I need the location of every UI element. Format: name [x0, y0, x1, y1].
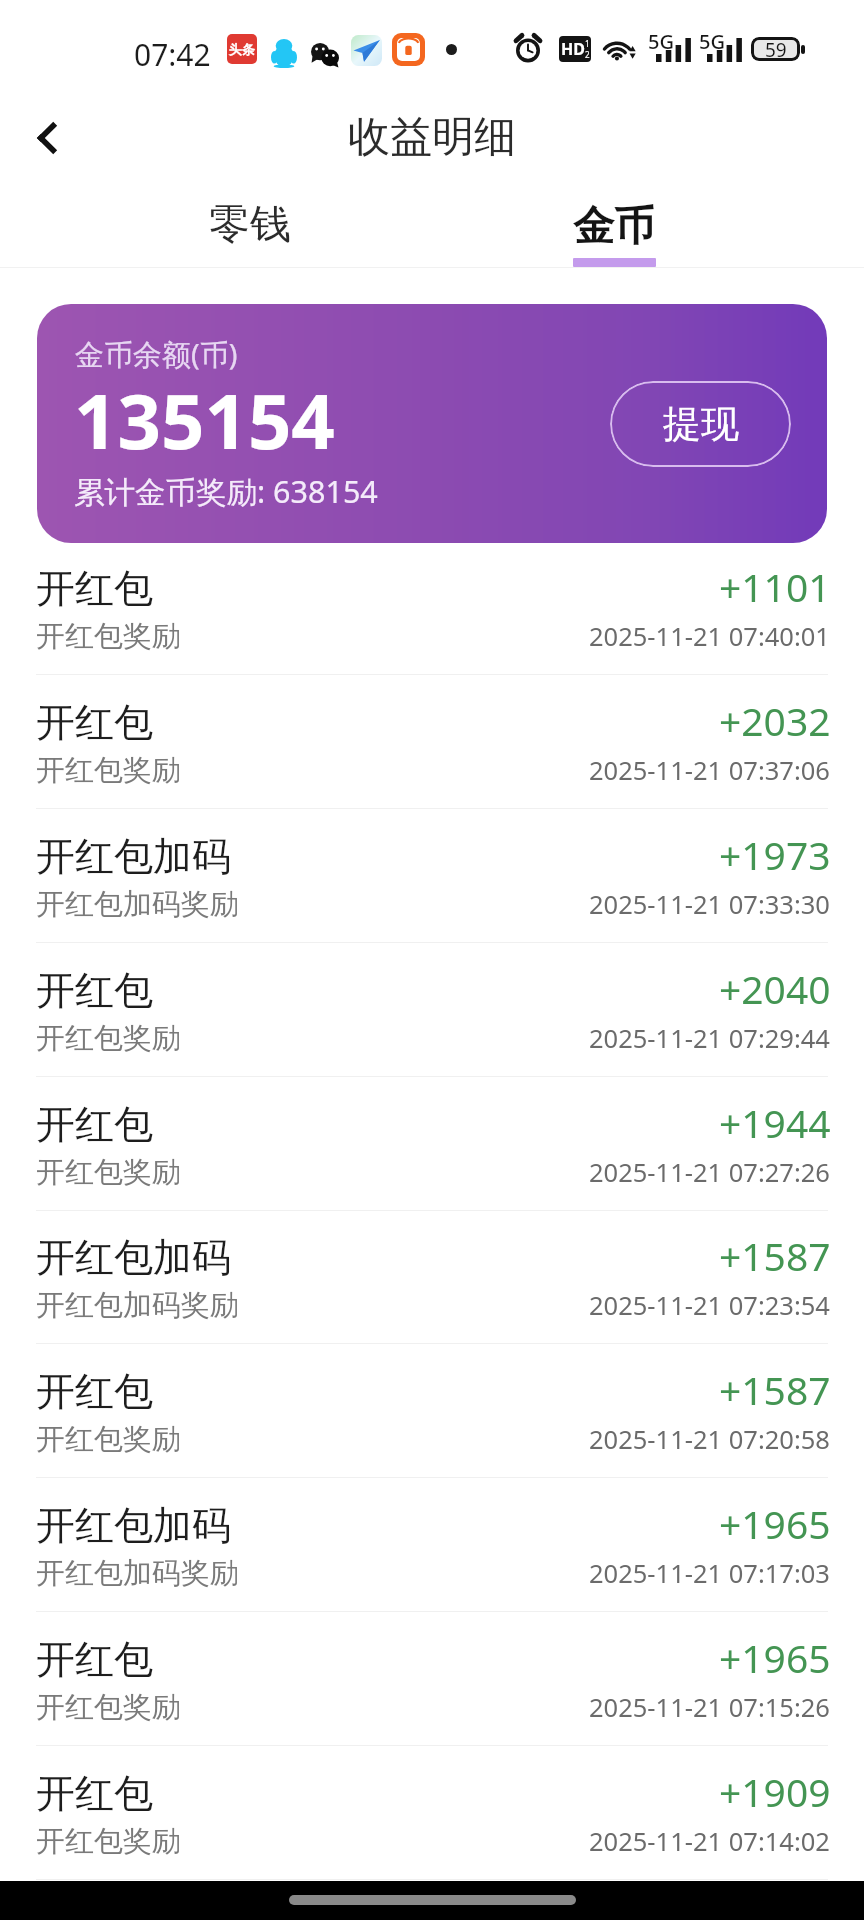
button[interactable]: 开红包加码: [0, 809, 864, 943]
staticText: +1587: [719, 1363, 831, 1416]
staticText: 开红包: [36, 698, 153, 747]
button[interactable]: 开红包: [0, 1612, 864, 1746]
button[interactable]: 提现: [610, 381, 791, 467]
button[interactable]: 开红包加码: [0, 1210, 864, 1344]
staticText: 开红包加码: [36, 1501, 231, 1550]
staticText: 开红包奖励: [36, 1020, 181, 1057]
staticText: 开红包奖励: [36, 618, 181, 655]
staticText: 开红包: [36, 1769, 153, 1818]
staticText: 2025-11-21 07:29:44: [589, 1021, 830, 1056]
staticText: 2025-11-21 07:37:06: [589, 753, 830, 788]
staticText: +1944: [719, 1096, 831, 1149]
staticText: 开红包: [36, 1367, 153, 1416]
staticText: +1973: [719, 828, 831, 881]
staticText: +2032: [719, 694, 831, 747]
staticText: 135154: [74, 368, 335, 472]
button[interactable]: 开红包: [0, 1077, 864, 1211]
staticText: +1909: [719, 1765, 831, 1818]
staticText: HD: [561, 38, 585, 60]
staticText: +2040: [719, 962, 831, 1015]
button[interactable]: Back: [11, 102, 83, 174]
staticText: 开红包: [36, 1635, 153, 1684]
staticText: 收益明细: [348, 111, 516, 164]
staticText: 59: [765, 37, 787, 61]
staticText: +1587: [719, 1229, 831, 1282]
staticText: 开红包加码奖励: [36, 886, 239, 923]
staticText: 开红包奖励: [36, 1421, 181, 1458]
button[interactable]: 开红包: [0, 541, 864, 675]
staticText: 开红包加码奖励: [36, 1555, 239, 1592]
staticText: 开红包加码奖励: [36, 1287, 239, 1324]
staticText: 累计金币奖励: 638154: [74, 470, 378, 512]
staticText: 开红包: [36, 1100, 153, 1149]
staticText: +1965: [719, 1497, 831, 1550]
staticText: 2025-11-21 07:27:26: [589, 1155, 830, 1190]
staticText: 开红包奖励: [36, 1823, 181, 1860]
staticText: 2025-11-21 07:33:30: [589, 887, 830, 922]
staticText: 开红包加码: [36, 1233, 231, 1282]
button[interactable]: 开红包: [0, 1746, 864, 1880]
staticText: 2025-11-21 07:40:01: [589, 619, 830, 654]
button[interactable]: 开红包: [0, 1344, 864, 1478]
staticText: 2025-11-21 07:14:02: [589, 1824, 830, 1859]
staticText: 提现: [663, 400, 739, 448]
staticText: 2025-11-21 07:20:58: [589, 1422, 830, 1457]
staticText: 开红包: [36, 564, 153, 613]
staticText: 2: [585, 49, 590, 60]
staticText: 头条: [229, 41, 255, 57]
staticText: 2025-11-21 07:23:54: [589, 1288, 830, 1323]
staticText: 5G: [699, 28, 725, 55]
button[interactable]: 金币: [524, 180, 704, 268]
staticText: 2025-11-21 07:17:03: [589, 1556, 830, 1591]
staticText: 金币余额(币): [75, 334, 238, 374]
staticText: 开红包: [36, 966, 153, 1015]
staticText: 开红包加码: [36, 832, 231, 881]
staticText: 开红包奖励: [36, 1154, 181, 1191]
staticText: 金币: [573, 201, 655, 253]
staticText: 开红包奖励: [36, 1689, 181, 1726]
button[interactable]: 开红包加码: [0, 1478, 864, 1612]
button[interactable]: 开红包: [0, 943, 864, 1077]
staticText: +1965: [719, 1631, 831, 1684]
staticText: 2025-11-21 07:15:26: [589, 1690, 830, 1725]
staticText: 开红包奖励: [36, 752, 181, 789]
staticText: +1101: [719, 560, 831, 613]
button[interactable]: 零钱: [160, 180, 340, 268]
staticText: 07:42: [134, 34, 211, 75]
staticText: 1: [585, 38, 590, 49]
button[interactable]: 开红包: [0, 675, 864, 809]
staticText: 零钱: [209, 199, 291, 251]
staticText: 5G: [648, 28, 674, 55]
